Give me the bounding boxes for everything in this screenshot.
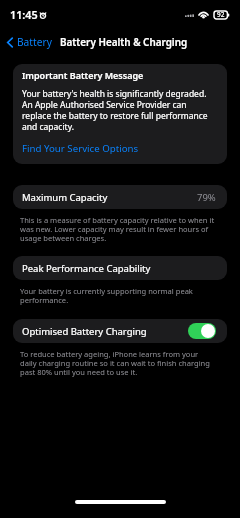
button[interactable]: Battery: [0, 32, 58, 52]
button[interactable]: Peak Performance Capability: [13, 256, 227, 280]
staticText: 79%: [197, 191, 216, 204]
button[interactable]: Optimised Battery Charging: [13, 319, 227, 343]
staticText: Optimised Battery Charging: [22, 325, 147, 338]
staticText: Maximum Capacity: [22, 191, 108, 204]
staticText: Your battery's health is significantly d…: [22, 88, 212, 132]
staticText: 11:45: [10, 7, 38, 22]
staticText: 92: [217, 10, 225, 19]
button[interactable]: Maximum Capacity: [13, 185, 227, 209]
staticText: Peak Performance Capability: [22, 262, 151, 275]
staticText: Important Battery Message: [22, 69, 144, 81]
staticText: Your battery is currently supporting nor…: [20, 286, 215, 305]
staticText: Battery: [17, 35, 52, 49]
staticText: To reduce battery ageing, iPhone learns …: [20, 349, 215, 377]
button[interactable]: Find Your Service Options: [22, 142, 139, 155]
button[interactable]: Optimised Battery Charging toggle: [188, 323, 216, 339]
staticText: Battery Health & Charging: [60, 35, 188, 48]
staticText: This is a measure of battery capacity re…: [20, 215, 215, 243]
